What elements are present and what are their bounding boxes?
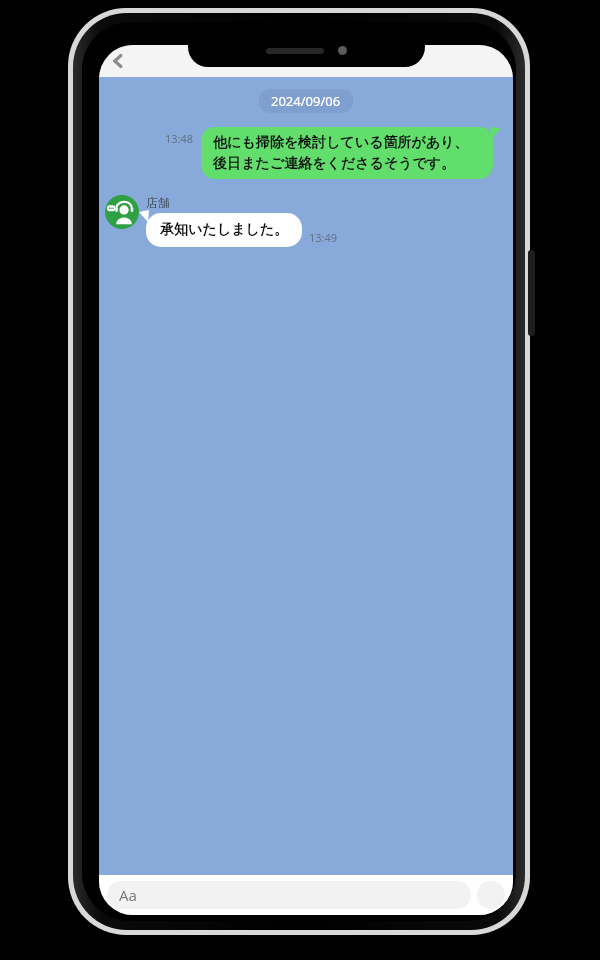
button[interactable]: Send <box>477 881 505 909</box>
staticText: Aa <box>119 885 138 905</box>
button[interactable]: 2024/09/06 <box>259 89 353 113</box>
staticText: 店舗 <box>146 195 170 210</box>
staticText: 13:48 <box>165 131 194 146</box>
button[interactable]: 他にも掃除を検討している箇所があり、後日またご連絡をくださるそうです。 <box>201 127 493 179</box>
button[interactable]: 承知いたしました。 <box>146 213 302 247</box>
button[interactable]: Aa <box>107 881 471 909</box>
button[interactable]: 店舗 avatar <box>105 195 139 229</box>
staticText: 承知いたしました。 <box>160 221 288 239</box>
staticText: 2024/09/06 <box>271 92 341 110</box>
staticText: 他にも掃除を検討している箇所があり、後日またご連絡をくださるそうです。 <box>213 134 481 172</box>
button[interactable]: Back <box>103 46 133 76</box>
staticText: 13:49 <box>309 230 338 245</box>
